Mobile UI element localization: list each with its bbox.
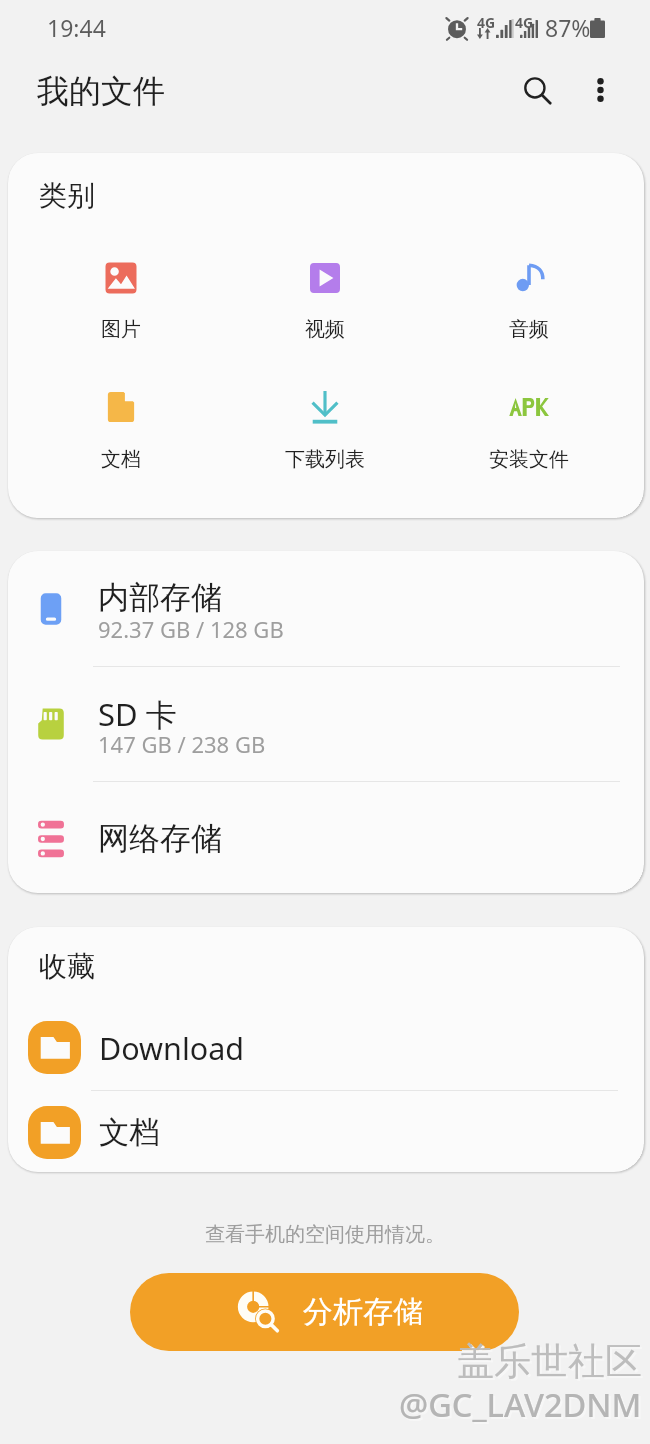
staticText: 收藏 — [39, 949, 95, 984]
staticText: 分析存储 — [303, 1293, 423, 1331]
staticText: @GC_LAV2DNM — [399, 1382, 642, 1426]
staticText: 内部存储 — [98, 578, 222, 617]
staticText: 盖乐世社区 — [459, 1340, 644, 1387]
staticText: 网络存储 — [98, 819, 222, 858]
button[interactable]: SD 卡 — [8, 666, 644, 781]
staticText: 查看手机的空间使用情况。 — [0, 1222, 650, 1247]
staticText: @GC_LAV2DNM — [401, 1384, 644, 1428]
staticText: 4G — [515, 13, 534, 32]
staticText: 我的文件 — [37, 71, 165, 111]
staticText: 文档 — [99, 1114, 160, 1152]
button[interactable]: More options — [568, 58, 632, 122]
button[interactable] — [59, 369, 183, 465]
button[interactable]: Download — [8, 1005, 644, 1090]
button[interactable]: Search — [505, 58, 569, 122]
button[interactable] — [59, 240, 183, 336]
button[interactable]: 网络存储 — [8, 781, 644, 893]
staticText: 19:44 — [47, 12, 106, 43]
staticText: 视频 — [305, 317, 345, 342]
button[interactable] — [467, 369, 591, 465]
button[interactable]: 文档 — [8, 1090, 644, 1172]
staticText: 下载列表 — [285, 447, 365, 472]
staticText: 盖乐世社区 — [457, 1338, 642, 1385]
staticText: 文档 — [101, 447, 141, 472]
staticText: 147 GB / 238 GB — [98, 729, 266, 759]
button[interactable]: 分析存储 — [130, 1273, 519, 1351]
staticText: 87% — [545, 12, 591, 43]
button[interactable] — [263, 240, 387, 336]
button[interactable] — [467, 240, 591, 336]
staticText: SD 卡 — [98, 693, 177, 735]
staticText: 安装文件 — [489, 447, 569, 472]
staticText: 图片 — [101, 317, 141, 342]
staticText: 92.37 GB / 128 GB — [98, 614, 284, 644]
staticText: 音频 — [509, 317, 549, 342]
staticText: 4G — [477, 13, 496, 32]
button[interactable] — [263, 369, 387, 465]
staticText: Download — [99, 1027, 245, 1069]
staticText: 类别 — [39, 178, 95, 213]
button[interactable]: 内部存储 — [8, 551, 644, 666]
